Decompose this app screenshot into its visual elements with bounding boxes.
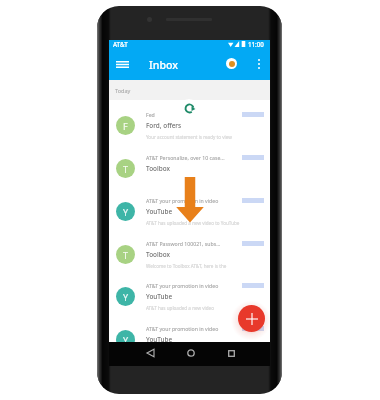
staticText: AT&T has uploaded a new video to YouTube	[146, 220, 240, 226]
staticText: Y	[123, 291, 129, 303]
staticText: Ford, offers	[146, 121, 182, 130]
button[interactable]: Back	[142, 345, 158, 361]
staticText: Inbox	[149, 58, 178, 72]
button[interactable]: T	[109, 150, 270, 193]
staticText: T	[123, 163, 129, 175]
staticText: 11:00	[248, 40, 264, 48]
staticText: YouTube	[146, 335, 173, 342]
button[interactable]: F	[109, 107, 270, 150]
staticText: AT&T your promotion in video	[146, 197, 219, 204]
button[interactable]: Open navigation drawer	[114, 56, 131, 73]
button[interactable]: Home	[183, 345, 199, 361]
button[interactable]: Account	[223, 55, 240, 72]
staticText: AT&T your promotion in video	[146, 282, 219, 289]
staticText: AT&T Password 100021, subs...	[146, 240, 221, 247]
button[interactable]: Y	[109, 321, 270, 342]
staticText: Toolbox	[146, 250, 170, 259]
button[interactable]: Y	[109, 278, 270, 321]
button[interactable]: Recent apps	[223, 345, 239, 361]
button[interactable]: Compose	[238, 305, 265, 332]
staticText: Today	[115, 87, 131, 94]
button[interactable]: More options	[252, 55, 265, 72]
staticText: YouTube	[146, 207, 173, 216]
staticText: Welcome to Toolbox AT&T, here is the	[146, 263, 227, 269]
staticText: AT&T	[113, 40, 128, 48]
staticText: AT&T has uploaded a new video	[146, 305, 214, 311]
button[interactable]: Y	[109, 193, 270, 236]
staticText: AT&T your promotion in video	[146, 325, 219, 332]
staticText: Your account statement is ready to view	[146, 134, 232, 140]
staticText: Fed	[146, 111, 155, 118]
staticText: YouTube	[146, 292, 173, 301]
staticText: AT&T Personalize, over 10 case...	[146, 154, 225, 161]
staticText: Toolbox	[146, 164, 170, 173]
staticText: F	[123, 120, 128, 132]
staticText: Y	[123, 206, 129, 218]
button[interactable]: T	[109, 236, 270, 279]
staticText: T	[123, 249, 129, 261]
staticText: Y	[123, 334, 129, 342]
